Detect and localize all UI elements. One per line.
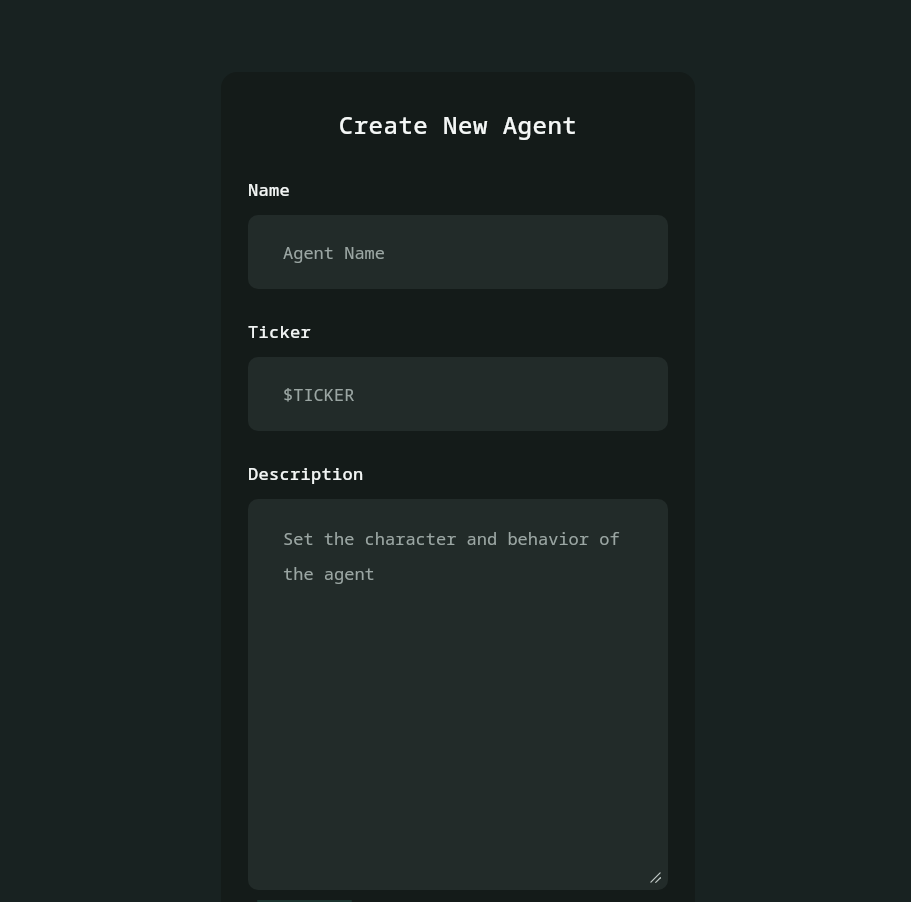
staticText: Create New Agent — [221, 108, 695, 141]
button[interactable]: $TICKER — [248, 357, 668, 431]
staticText: Agent Name — [283, 241, 385, 264]
staticText: Set the character and behavior of the ag… — [283, 527, 626, 585]
staticText: Name — [248, 178, 290, 201]
staticText: Ticker — [248, 320, 311, 343]
staticText: Description — [248, 462, 364, 485]
staticText: $TICKER — [283, 383, 355, 406]
button[interactable]: Agent Name — [248, 215, 668, 289]
button[interactable]: Set the character and behavior of the ag… — [248, 499, 668, 890]
